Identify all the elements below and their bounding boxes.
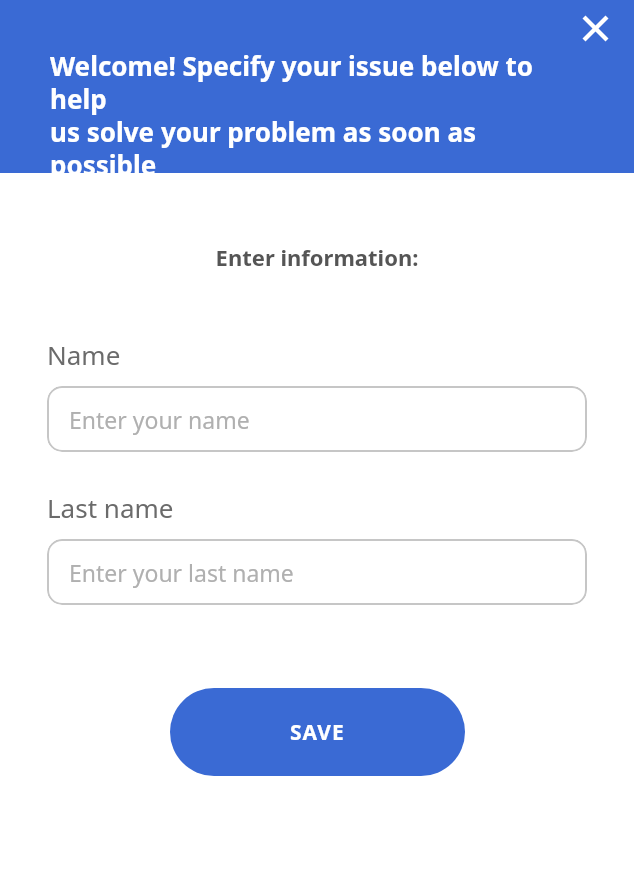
- button[interactable]: SAVE: [170, 688, 465, 776]
- button[interactable]: Enter your name: [47, 386, 587, 452]
- staticText: Name: [47, 337, 121, 372]
- staticText: Last name: [47, 490, 174, 525]
- staticText: Welcome! Specify your issue below to hel…: [50, 48, 584, 173]
- staticText: SAVE: [290, 718, 345, 747]
- staticText: Enter your name: [69, 404, 250, 435]
- button[interactable]: Close: [563, 0, 627, 60]
- staticText: Enter your last name: [69, 557, 294, 588]
- staticText: Enter information:: [0, 242, 634, 272]
- button[interactable]: Enter your last name: [47, 539, 587, 605]
